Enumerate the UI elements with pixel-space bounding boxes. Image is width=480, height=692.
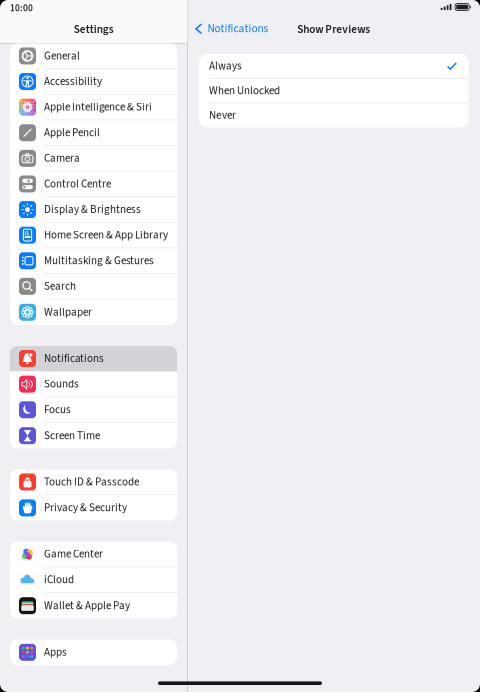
staticText: 10:00 bbox=[10, 2, 33, 15]
button[interactable]: Privacy & Security bbox=[10, 495, 177, 521]
button[interactable]: Screen Time bbox=[10, 423, 177, 448]
staticText: iCloud bbox=[44, 572, 74, 588]
staticText: Accessibility bbox=[44, 74, 102, 89]
staticText: Home Screen & App Library bbox=[44, 227, 168, 243]
staticText: Wallpaper bbox=[44, 304, 92, 320]
button[interactable]: Apple Intelligence & Siri bbox=[10, 95, 177, 120]
staticText: Camera bbox=[44, 150, 80, 166]
button[interactable]: Notifications bbox=[187, 0, 268, 37]
button[interactable]: Control Centre bbox=[10, 171, 177, 197]
button[interactable]: Camera bbox=[10, 146, 177, 171]
button[interactable]: Touch ID & Passcode bbox=[10, 469, 177, 495]
staticText: Focus bbox=[44, 402, 71, 418]
staticText: Touch ID & Passcode bbox=[44, 474, 139, 490]
staticText: Wallet & Apple Pay bbox=[44, 598, 130, 614]
button[interactable]: Never bbox=[199, 103, 468, 127]
staticText: Game Center bbox=[44, 546, 103, 562]
staticText: Screen Time bbox=[44, 428, 100, 444]
button[interactable]: General bbox=[10, 43, 177, 69]
staticText: Always bbox=[209, 58, 242, 74]
button[interactable]: Apps bbox=[10, 639, 177, 665]
button[interactable]: iCloud bbox=[10, 567, 177, 593]
staticText: Multitasking & Gestures bbox=[44, 253, 154, 269]
staticText: Control Centre bbox=[44, 176, 111, 192]
button[interactable]: Wallpaper bbox=[10, 299, 177, 325]
button[interactable]: Game Center bbox=[10, 542, 177, 567]
staticText: Sounds bbox=[44, 376, 79, 392]
button[interactable]: Notifications bbox=[10, 346, 177, 372]
button[interactable]: When Unlocked bbox=[199, 79, 468, 103]
button[interactable]: Sounds bbox=[10, 372, 177, 397]
staticText: Never bbox=[209, 107, 236, 123]
button[interactable]: Multitasking & Gestures bbox=[10, 248, 177, 274]
staticText: Display & Brightness bbox=[44, 202, 141, 217]
button[interactable]: Display & Brightness bbox=[10, 197, 177, 223]
staticText: Apps bbox=[44, 644, 67, 660]
staticText: Privacy & Security bbox=[44, 500, 127, 516]
staticText: Settings bbox=[74, 21, 114, 37]
staticText: Apple Intelligence & Siri bbox=[44, 99, 152, 115]
button[interactable]: Apple Pencil bbox=[10, 120, 177, 146]
staticText: Notifications bbox=[207, 20, 268, 37]
staticText: Search bbox=[44, 278, 76, 294]
button[interactable]: Home Screen & App Library bbox=[10, 223, 177, 248]
button[interactable]: Wallet & Apple Pay bbox=[10, 593, 177, 618]
button[interactable]: Accessibility bbox=[10, 69, 177, 95]
button[interactable]: Always bbox=[199, 54, 468, 78]
button[interactable]: Focus bbox=[10, 397, 177, 423]
staticText: General bbox=[44, 48, 80, 64]
button[interactable]: Search bbox=[10, 274, 177, 299]
staticText: Notifications bbox=[44, 351, 104, 366]
staticText: Show Previews bbox=[297, 21, 370, 37]
staticText: Apple Pencil bbox=[44, 125, 100, 141]
staticText: When Unlocked bbox=[209, 83, 280, 99]
